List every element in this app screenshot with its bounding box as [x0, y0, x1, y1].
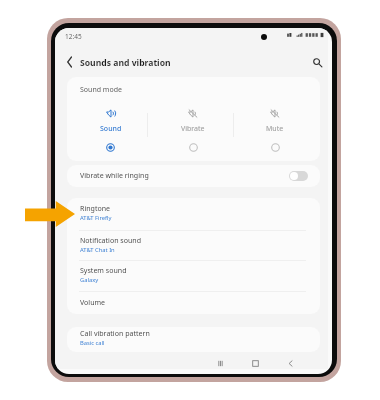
staticText: AT&T Firefly [80, 214, 112, 222]
button[interactable]: Sound [69, 77, 152, 161]
staticText: Sounds and vibration [80, 57, 171, 69]
button[interactable]: Ringtone [67, 202, 320, 232]
staticText: Vibrate [181, 124, 205, 134]
button[interactable]: Recents [209, 355, 231, 371]
staticText: Volume [80, 297, 106, 307]
staticText: Notification sound [80, 235, 142, 245]
staticText: Ringtone [80, 203, 111, 213]
staticText: AT&T Chat In [80, 246, 115, 254]
button[interactable]: Notification sound [67, 234, 320, 264]
staticText: Mute [266, 124, 284, 134]
button[interactable]: System sound [67, 264, 320, 293]
button[interactable]: Back [60, 53, 78, 71]
staticText: Call vibration pattern [80, 328, 150, 338]
button[interactable]: Home [244, 355, 266, 371]
staticText: Basic call [80, 339, 105, 347]
button[interactable]: Back [279, 355, 301, 371]
staticText: Galaxy [80, 276, 99, 284]
button[interactable]: Mute [234, 77, 316, 161]
button[interactable]: Volume [67, 297, 320, 313]
staticText: System sound [80, 265, 127, 275]
staticText: Sound [100, 124, 122, 134]
staticText: Vibrate while ringing [80, 170, 149, 180]
button[interactable]: Search [308, 53, 326, 71]
staticText: Sound mode [80, 85, 122, 95]
staticText: 12:45 [65, 32, 82, 41]
button[interactable]: Call vibration pattern [67, 327, 320, 352]
button[interactable]: Vibrate [152, 77, 234, 161]
button[interactable]: Vibrate while ringing [67, 165, 320, 187]
